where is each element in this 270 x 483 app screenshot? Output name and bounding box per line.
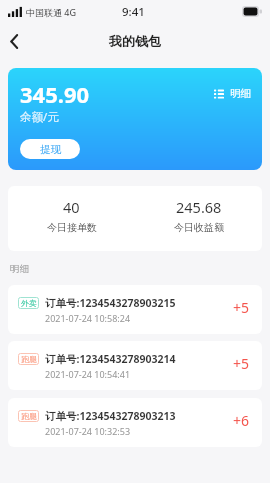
- button[interactable]: Back: [0, 27, 28, 55]
- staticText: 订单号:1234543278903215: [45, 296, 176, 310]
- staticText: 245.68: [176, 197, 222, 217]
- staticText: 2021-07-24 10:58:24: [45, 312, 131, 324]
- staticText: 345.90: [20, 79, 90, 109]
- staticText: 提现: [40, 143, 61, 156]
- staticText: +6: [233, 411, 250, 430]
- staticText: 2021-07-24 10:54:41: [45, 368, 131, 380]
- button[interactable]: 提现: [20, 139, 80, 159]
- button[interactable]: 明细: [214, 87, 251, 100]
- staticText: 订单号:1234543278903214: [45, 352, 176, 366]
- button[interactable]: 跑腿: [8, 398, 262, 447]
- staticText: 我的钱包: [109, 33, 161, 49]
- staticText: 2021-07-24 10:32:53: [45, 425, 131, 437]
- button[interactable]: 40: [8, 186, 135, 251]
- staticText: 今日接单数: [47, 221, 97, 234]
- staticText: 跑腿: [21, 354, 37, 364]
- staticText: 40: [63, 197, 80, 217]
- staticText: +5: [233, 354, 250, 373]
- staticText: 中国联通 4G: [26, 6, 77, 18]
- staticText: 订单号:1234543278903213: [45, 409, 176, 423]
- button[interactable]: 245.68: [135, 186, 262, 251]
- staticText: 跑腿: [21, 411, 37, 421]
- staticText: 今日收益额: [174, 221, 224, 234]
- staticText: 明细: [230, 87, 251, 100]
- staticText: 外卖: [21, 298, 37, 308]
- button[interactable]: 跑腿: [8, 341, 262, 390]
- staticText: 余额/元: [20, 109, 59, 125]
- staticText: 9:41: [122, 4, 145, 20]
- button[interactable]: 外卖: [8, 285, 262, 334]
- staticText: 明细: [10, 263, 29, 275]
- staticText: +5: [233, 298, 250, 317]
